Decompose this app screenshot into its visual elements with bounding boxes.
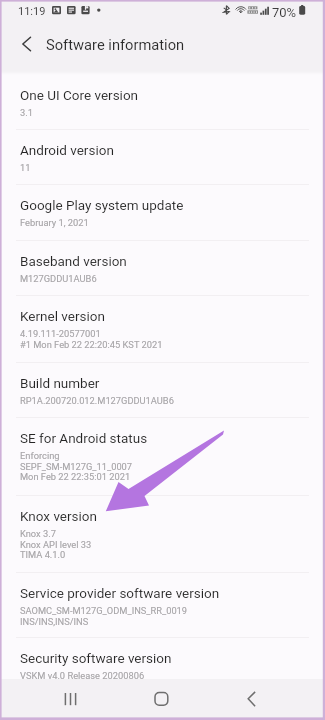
button[interactable]: Build number xyxy=(0,362,325,417)
button[interactable]: Recent apps xyxy=(46,679,94,720)
staticText: M127GDDU1AUB6 xyxy=(20,273,97,284)
staticText: TIMA 4.1.0 xyxy=(20,549,66,560)
staticText: VSKM v4.0 Release 20200806 xyxy=(20,670,145,681)
staticText: 11:19 xyxy=(18,5,46,18)
staticText: Android version xyxy=(20,142,114,158)
staticText: INS/INS,INS/INS xyxy=(20,616,89,627)
staticText: 4.19.111-20577001 xyxy=(20,328,101,339)
staticText: Software information xyxy=(46,36,185,53)
staticText: SAOMC_SM-M127G_ODM_INS_RR_0019 xyxy=(20,605,188,616)
staticText: Knox version xyxy=(20,508,97,524)
staticText: 70% xyxy=(272,5,297,20)
staticText: Knox 3.7 xyxy=(20,528,56,539)
staticText: SE for Android status xyxy=(20,430,148,446)
staticText: 3.1 xyxy=(20,107,33,118)
staticText: Google Play system update xyxy=(20,197,184,213)
staticText: #1 Mon Feb 22 22:20:45 KST 2021 xyxy=(20,339,163,350)
staticText: Security software version xyxy=(20,650,172,666)
button[interactable]: One UI Core version xyxy=(0,74,325,129)
staticText: 11 xyxy=(20,162,31,173)
staticText: Baseband version xyxy=(20,253,127,269)
staticText: One UI Core version xyxy=(20,87,139,103)
staticText: SEPF_SM-M127G_11_0007 xyxy=(20,461,133,472)
staticText: Knox API level 33 xyxy=(20,539,92,550)
staticText: RP1A.200720.012.M127GDDU1AUB6 xyxy=(20,395,174,406)
button[interactable]: Navigate up xyxy=(13,30,41,58)
button[interactable]: Android version xyxy=(0,129,325,184)
staticText: Mon Feb 22 22:35:01 2021 xyxy=(20,471,131,482)
button[interactable]: Knox version xyxy=(0,495,325,572)
staticText: Build number xyxy=(20,375,100,391)
button[interactable]: Home xyxy=(137,679,185,720)
staticText: February 1, 2021 xyxy=(20,217,89,228)
button[interactable]: Back xyxy=(228,679,276,720)
button[interactable]: Baseband version xyxy=(0,240,325,295)
staticText: Kernel version xyxy=(20,308,105,324)
button[interactable]: SE for Android status xyxy=(0,417,325,495)
button[interactable]: Kernel version xyxy=(0,295,325,362)
button[interactable]: Service provider software version xyxy=(0,572,325,637)
button[interactable]: Google Play system update xyxy=(0,184,325,240)
staticText: Service provider software version xyxy=(20,585,220,601)
button[interactable]: Security software version xyxy=(0,637,325,692)
staticText: Enforcing xyxy=(20,450,60,461)
